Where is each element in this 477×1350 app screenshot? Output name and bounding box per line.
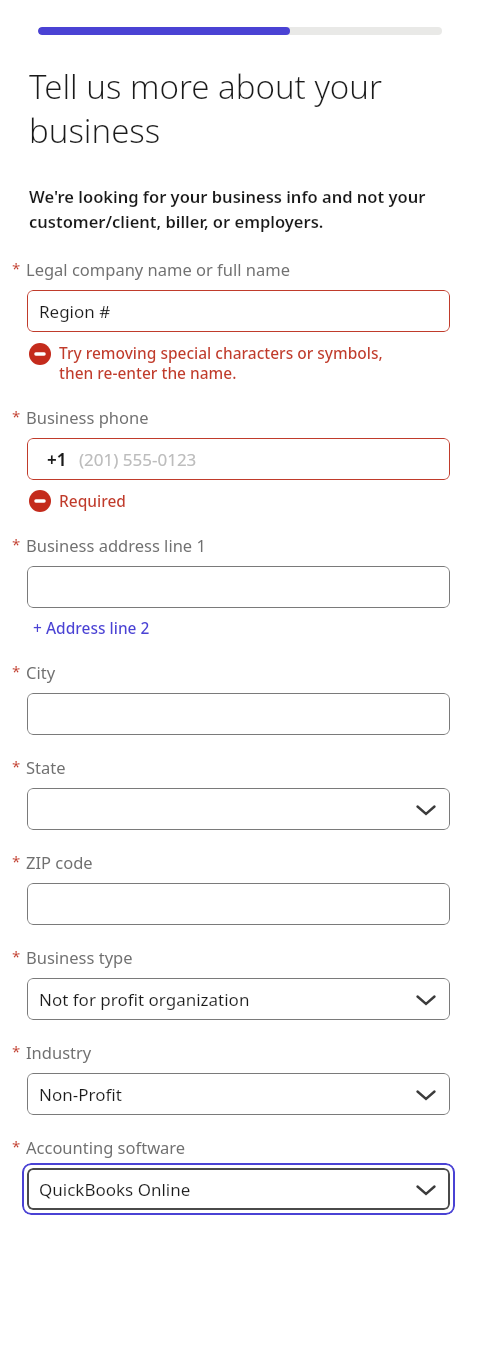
button[interactable]: + Address line 2 bbox=[33, 617, 150, 638]
button[interactable]: Non-Profit bbox=[27, 1073, 450, 1115]
button[interactable]: QuickBooks Online bbox=[22, 1163, 455, 1215]
other: Open State list bbox=[414, 797, 438, 821]
staticText: Region # bbox=[39, 300, 111, 323]
button[interactable]: +1 bbox=[27, 438, 450, 480]
staticText: Business address line 1 bbox=[26, 534, 206, 556]
button[interactable] bbox=[27, 883, 450, 925]
staticText: +1 bbox=[47, 448, 67, 471]
staticText: Not for profit organization bbox=[39, 988, 250, 1011]
staticText: City bbox=[26, 661, 56, 683]
button[interactable] bbox=[27, 693, 450, 735]
button[interactable]: Not for profit organization bbox=[27, 978, 450, 1020]
staticText: QuickBooks Online bbox=[39, 1178, 191, 1201]
staticText: We're looking for your business info and… bbox=[29, 185, 451, 232]
staticText: * bbox=[12, 1136, 21, 1156]
staticText: Non-Profit bbox=[39, 1083, 122, 1106]
staticText: * bbox=[12, 1041, 21, 1061]
staticText: Try removing special characters or symbo… bbox=[59, 342, 383, 384]
staticText: * bbox=[12, 946, 21, 966]
staticText: Legal company name or full name bbox=[26, 258, 290, 280]
staticText: * bbox=[12, 756, 21, 776]
staticText: * bbox=[12, 661, 21, 681]
staticText: * bbox=[12, 534, 21, 554]
staticText: (201) 555-0123 bbox=[79, 448, 197, 471]
button[interactable] bbox=[27, 566, 450, 608]
staticText: Accounting software bbox=[26, 1136, 186, 1158]
button[interactable]: Region # bbox=[27, 290, 450, 332]
button[interactable]: Open State list bbox=[27, 788, 450, 830]
other: Open Accounting software list bbox=[414, 1177, 438, 1201]
staticText: State bbox=[26, 756, 66, 778]
staticText: Industry bbox=[26, 1041, 92, 1063]
staticText: * bbox=[12, 258, 21, 278]
staticText: Required bbox=[59, 490, 126, 511]
staticText: Business type bbox=[26, 946, 133, 968]
other: Open Business type list bbox=[414, 987, 438, 1011]
staticText: Business phone bbox=[26, 406, 149, 428]
other: Open Industry list bbox=[414, 1082, 438, 1106]
staticText: + Address line 2 bbox=[33, 617, 150, 638]
staticText: Tell us more about your business bbox=[29, 64, 447, 152]
staticText: * bbox=[12, 406, 21, 426]
staticText: ZIP code bbox=[26, 851, 93, 873]
staticText: * bbox=[12, 851, 21, 871]
